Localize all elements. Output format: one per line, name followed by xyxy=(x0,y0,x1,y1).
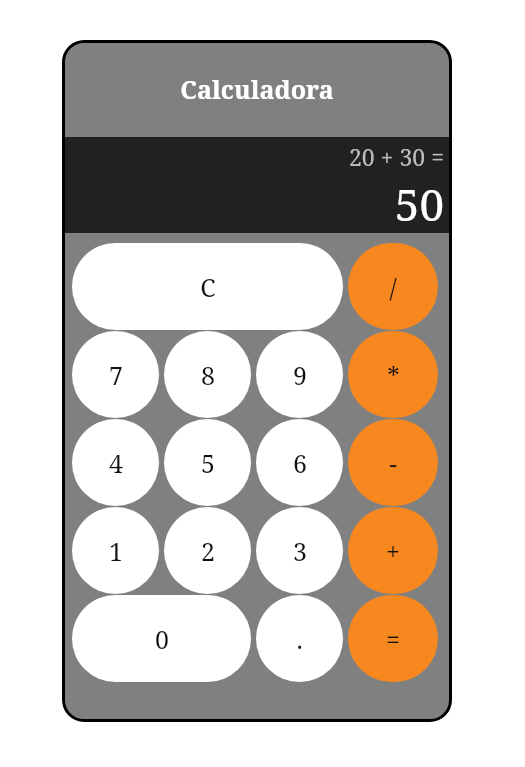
staticText: 5 xyxy=(201,446,215,480)
button[interactable]: + xyxy=(348,507,438,594)
staticText: 0 xyxy=(155,622,169,656)
button[interactable]: . xyxy=(256,595,343,682)
staticText: 3 xyxy=(293,534,307,568)
staticText: 1 xyxy=(109,534,123,568)
staticText: 20 + 30 = xyxy=(348,141,444,172)
staticText: 6 xyxy=(293,446,307,480)
button[interactable]: / xyxy=(348,243,438,330)
staticText: C xyxy=(200,270,216,304)
button[interactable]: 6 xyxy=(256,419,343,506)
staticText: 7 xyxy=(109,358,123,392)
button[interactable]: 1 xyxy=(72,507,159,594)
button[interactable]: - xyxy=(348,419,438,506)
staticText: + xyxy=(386,534,400,568)
staticText: = xyxy=(386,622,400,656)
staticText: 8 xyxy=(201,358,215,392)
button[interactable]: = xyxy=(348,595,438,682)
button[interactable]: C xyxy=(72,243,343,330)
button[interactable]: 2 xyxy=(164,507,251,594)
staticText: 9 xyxy=(293,358,307,392)
button[interactable]: 9 xyxy=(256,331,343,418)
button[interactable]: * xyxy=(348,331,438,418)
staticText: Calculadora xyxy=(180,72,334,106)
button[interactable]: 0 xyxy=(72,595,251,682)
staticText: 4 xyxy=(109,446,123,480)
button[interactable]: 3 xyxy=(256,507,343,594)
staticText: * xyxy=(387,358,400,392)
button[interactable]: 7 xyxy=(72,331,159,418)
staticText: / xyxy=(389,270,397,304)
staticText: 2 xyxy=(201,534,215,568)
staticText: . xyxy=(296,622,303,656)
button[interactable]: 4 xyxy=(72,419,159,506)
button[interactable]: 5 xyxy=(164,419,251,506)
staticText: - xyxy=(389,446,397,480)
staticText: 50 xyxy=(394,174,444,227)
button[interactable]: 8 xyxy=(164,331,251,418)
